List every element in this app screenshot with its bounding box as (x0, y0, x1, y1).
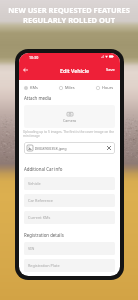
staticText: Save (106, 67, 115, 72)
staticText: IMG8900358.jpeg (35, 146, 67, 151)
staticText: Camera (63, 118, 77, 123)
staticText: Hours (102, 85, 114, 90)
staticText: Registration details (24, 232, 64, 238)
staticText: Uploading up to 5 images. The first is t… (23, 130, 115, 138)
button[interactable]: IMG8900358.jpeg (24, 142, 115, 154)
button[interactable]: KMs (24, 85, 59, 90)
button[interactable]: Remove file (105, 144, 113, 152)
staticText: Registration Plate (28, 263, 60, 268)
staticText: NEW USER REQUESTED FEATURES (8, 5, 130, 15)
staticText: Current KMs (28, 215, 51, 220)
staticText: Additional Car info (24, 166, 63, 172)
button[interactable]: Car Reference (24, 194, 115, 207)
staticText: Attach media (24, 95, 52, 101)
staticText: KMs (30, 85, 38, 90)
button[interactable]: Camera (24, 105, 115, 128)
staticText: 10:30 (29, 55, 39, 60)
button[interactable]: VIN (24, 242, 115, 255)
button[interactable]: Back (20, 64, 31, 75)
button[interactable]: Vehicle (24, 177, 115, 190)
staticText: Edit Vehicle (60, 67, 90, 74)
button[interactable]: Current KMs (24, 211, 115, 224)
button[interactable]: Registration Plate (24, 259, 115, 272)
staticText: VIN (28, 246, 35, 251)
button[interactable]: Miles (59, 85, 96, 90)
button[interactable]: Hours (96, 85, 120, 90)
staticText: Miles (65, 85, 75, 90)
staticText: Car Reference (28, 198, 53, 203)
button[interactable]: Save (106, 67, 115, 72)
staticText: Vehicle (28, 181, 41, 186)
staticText: REGULARLY ROLLED OUT (23, 15, 115, 25)
